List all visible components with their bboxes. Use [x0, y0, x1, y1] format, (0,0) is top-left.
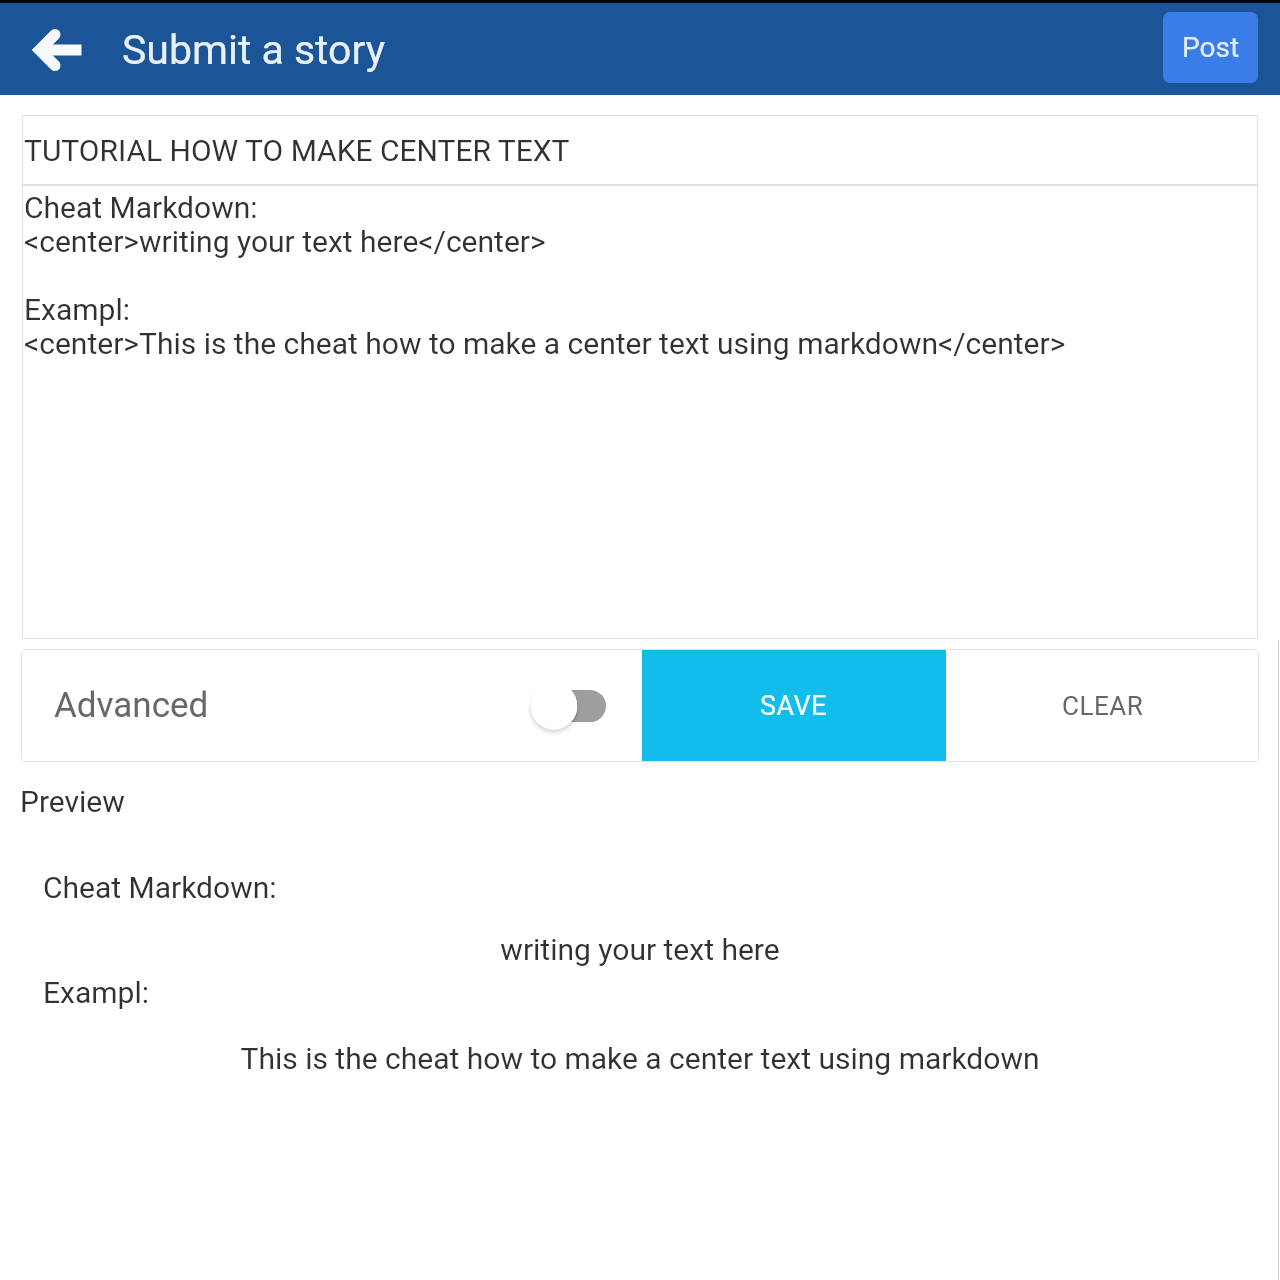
- staticText: Advanced: [54, 685, 209, 726]
- staticText: CLEAR: [1062, 691, 1144, 721]
- staticText: Preview: [20, 784, 125, 819]
- staticText: SAVE: [760, 690, 828, 722]
- staticText: Post: [1182, 31, 1240, 64]
- staticText: Cheat Markdown:: [43, 870, 277, 905]
- staticText: Exampl:: [43, 975, 149, 1010]
- button[interactable]: Back: [0, 3, 116, 95]
- staticText: Submit a story: [122, 26, 386, 74]
- button[interactable]: Advanced: [21, 649, 642, 762]
- staticText: This is the cheat how to make a center t…: [0, 1041, 1280, 1076]
- button[interactable]: CLEAR: [946, 649, 1259, 762]
- button[interactable]: SAVE: [642, 649, 946, 762]
- staticText: writing your text here: [0, 932, 1280, 967]
- button[interactable]: Cheat Markdown: <center>writing your tex…: [22, 185, 1258, 639]
- staticText: Cheat Markdown: <center>writing your tex…: [24, 190, 1066, 361]
- button[interactable]: Post: [1163, 12, 1258, 83]
- button[interactable]: TUTORIAL HOW TO MAKE CENTER TEXT: [22, 115, 1258, 185]
- staticText: TUTORIAL HOW TO MAKE CENTER TEXT: [24, 133, 570, 168]
